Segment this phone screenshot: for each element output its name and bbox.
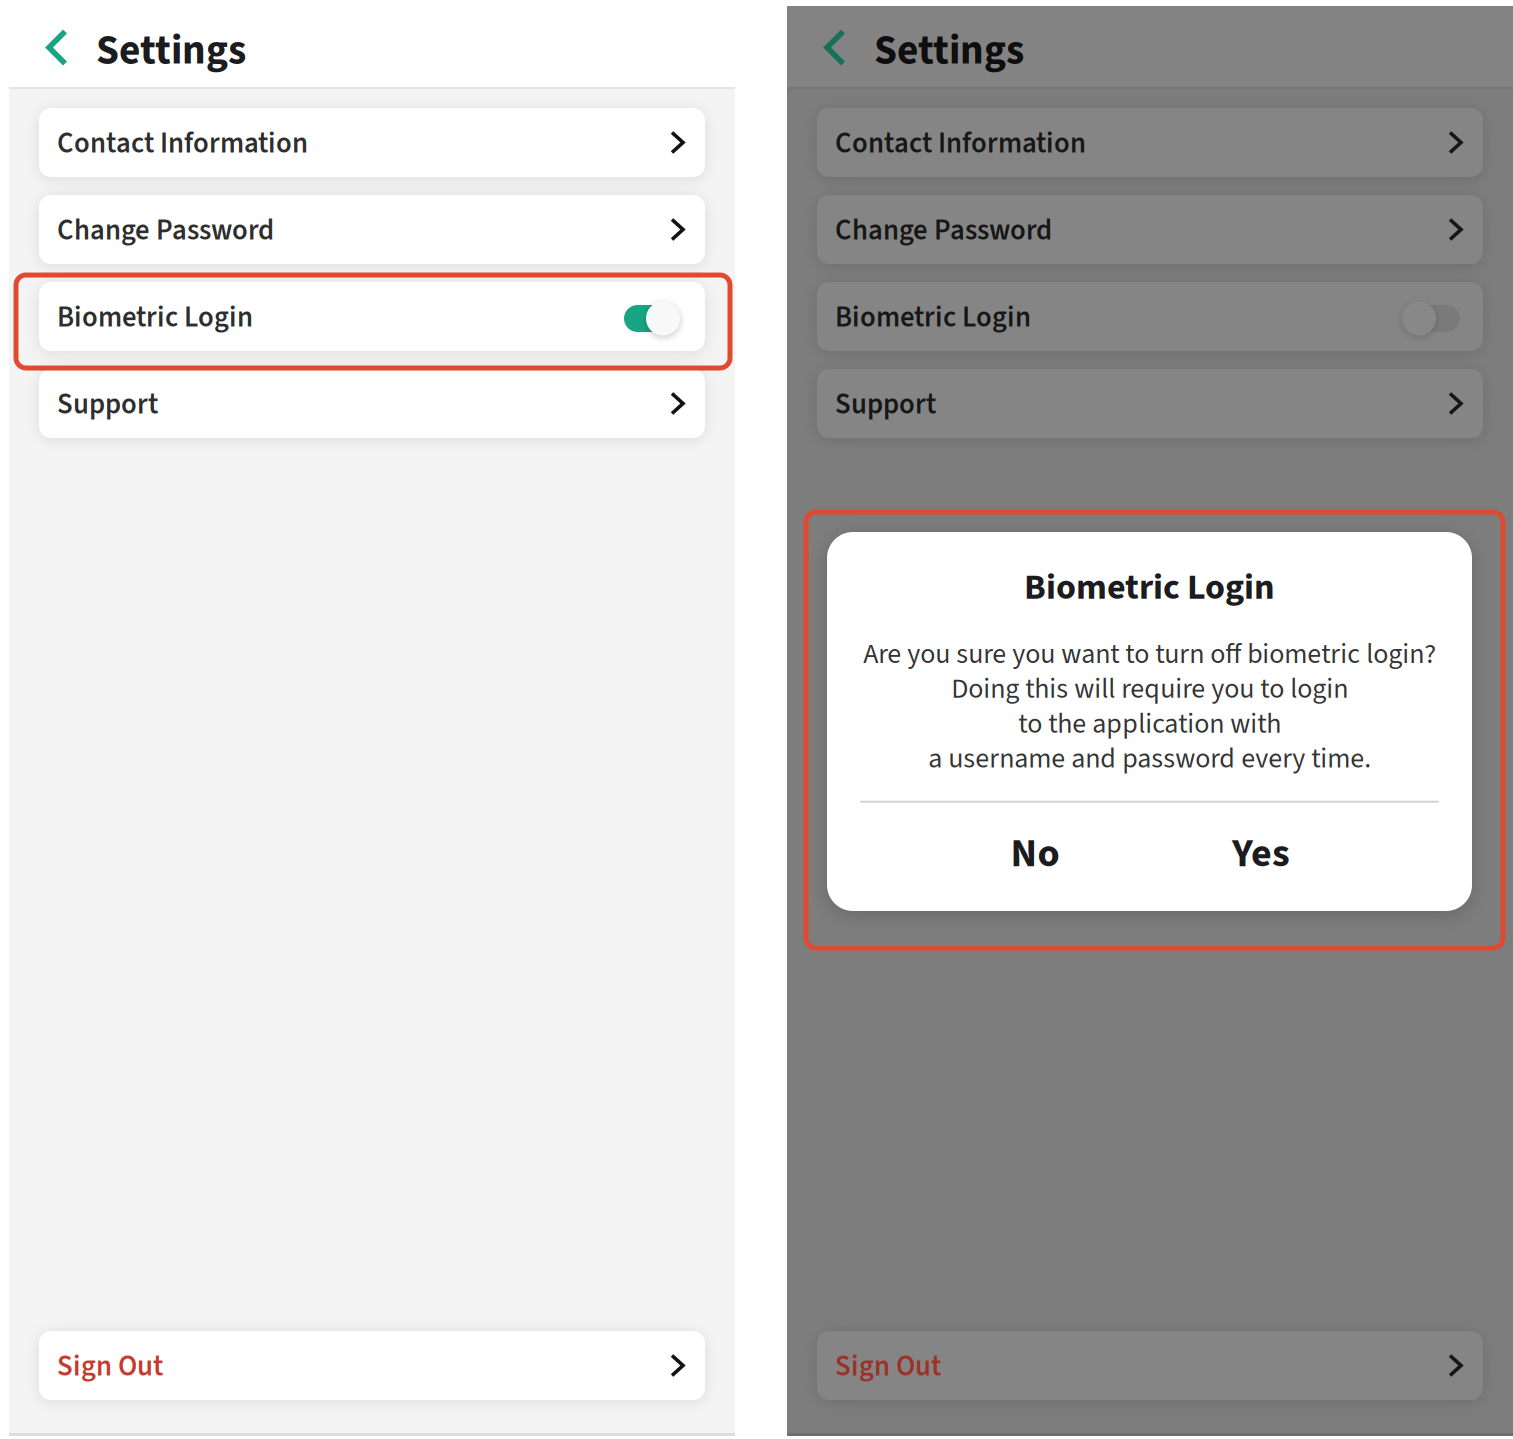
- staticText: Settings: [874, 21, 1024, 80]
- button[interactable]: Sign Out: [817, 1331, 1483, 1400]
- button[interactable]: Biometric Login: [817, 282, 1483, 351]
- button[interactable]: Sign Out: [39, 1331, 705, 1400]
- button[interactable]: Change Password: [39, 195, 705, 264]
- staticText: Biometric Login: [1024, 562, 1275, 613]
- button[interactable]: Back: [9, 6, 96, 89]
- staticText: Biometric Login: [57, 297, 253, 338]
- staticText: Are you sure you want to turn off biomet…: [863, 634, 1436, 779]
- staticText: Sign Out: [835, 1346, 941, 1387]
- button[interactable]: Support: [39, 369, 705, 438]
- staticText: Contact Information: [835, 123, 1086, 164]
- staticText: Support: [57, 384, 158, 425]
- button[interactable]: Yes: [1181, 817, 1341, 891]
- staticText: Change Password: [57, 210, 274, 251]
- button[interactable]: No: [955, 817, 1115, 891]
- staticText: Biometric Login: [835, 297, 1031, 338]
- staticText: No: [1010, 825, 1059, 882]
- staticText: Sign Out: [57, 1346, 163, 1387]
- button[interactable]: Back: [787, 6, 874, 89]
- button[interactable]: Support: [817, 369, 1483, 438]
- staticText: Yes: [1232, 825, 1290, 882]
- staticText: Change Password: [835, 210, 1052, 251]
- button[interactable]: Contact Information: [817, 108, 1483, 177]
- button[interactable]: Change Password: [817, 195, 1483, 264]
- button[interactable]: Contact Information: [39, 108, 705, 177]
- staticText: Settings: [96, 21, 246, 80]
- staticText: Contact Information: [57, 123, 308, 164]
- staticText: Support: [835, 384, 936, 425]
- button[interactable]: Biometric Login: [39, 282, 705, 351]
